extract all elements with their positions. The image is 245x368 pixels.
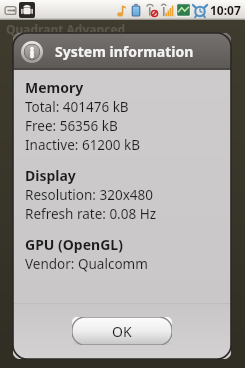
staticText: Memory	[25, 78, 84, 97]
other: Android notification	[19, 2, 35, 18]
staticText: Display	[25, 166, 76, 185]
other: USB connected	[3, 3, 18, 18]
button[interactable]: OK	[72, 317, 172, 345]
other: Mobile signal	[161, 3, 175, 18]
staticText: Inactive: 61200 kB	[25, 136, 141, 154]
staticText: Total: 401476 kB	[25, 98, 129, 116]
staticText: Refresh rate: 0.08 Hz	[25, 205, 157, 223]
staticText: Resolution: 320x480	[25, 186, 153, 204]
staticText: 10:07	[210, 2, 241, 18]
staticText: Quadrant Advanced	[6, 21, 126, 37]
staticText: OK	[112, 322, 132, 341]
other: Battery	[130, 3, 142, 18]
staticText: Free: 56356 kB	[25, 117, 118, 135]
other: GPS disabled	[145, 3, 159, 18]
other: Screenshot	[176, 3, 191, 17]
staticText: GPU (OpenGL)	[25, 235, 123, 254]
staticText: Vendor: Qualcomm	[25, 255, 148, 273]
staticText: System information	[55, 42, 194, 61]
other: Music playing	[114, 3, 127, 18]
other: Alarm set	[193, 3, 207, 18]
